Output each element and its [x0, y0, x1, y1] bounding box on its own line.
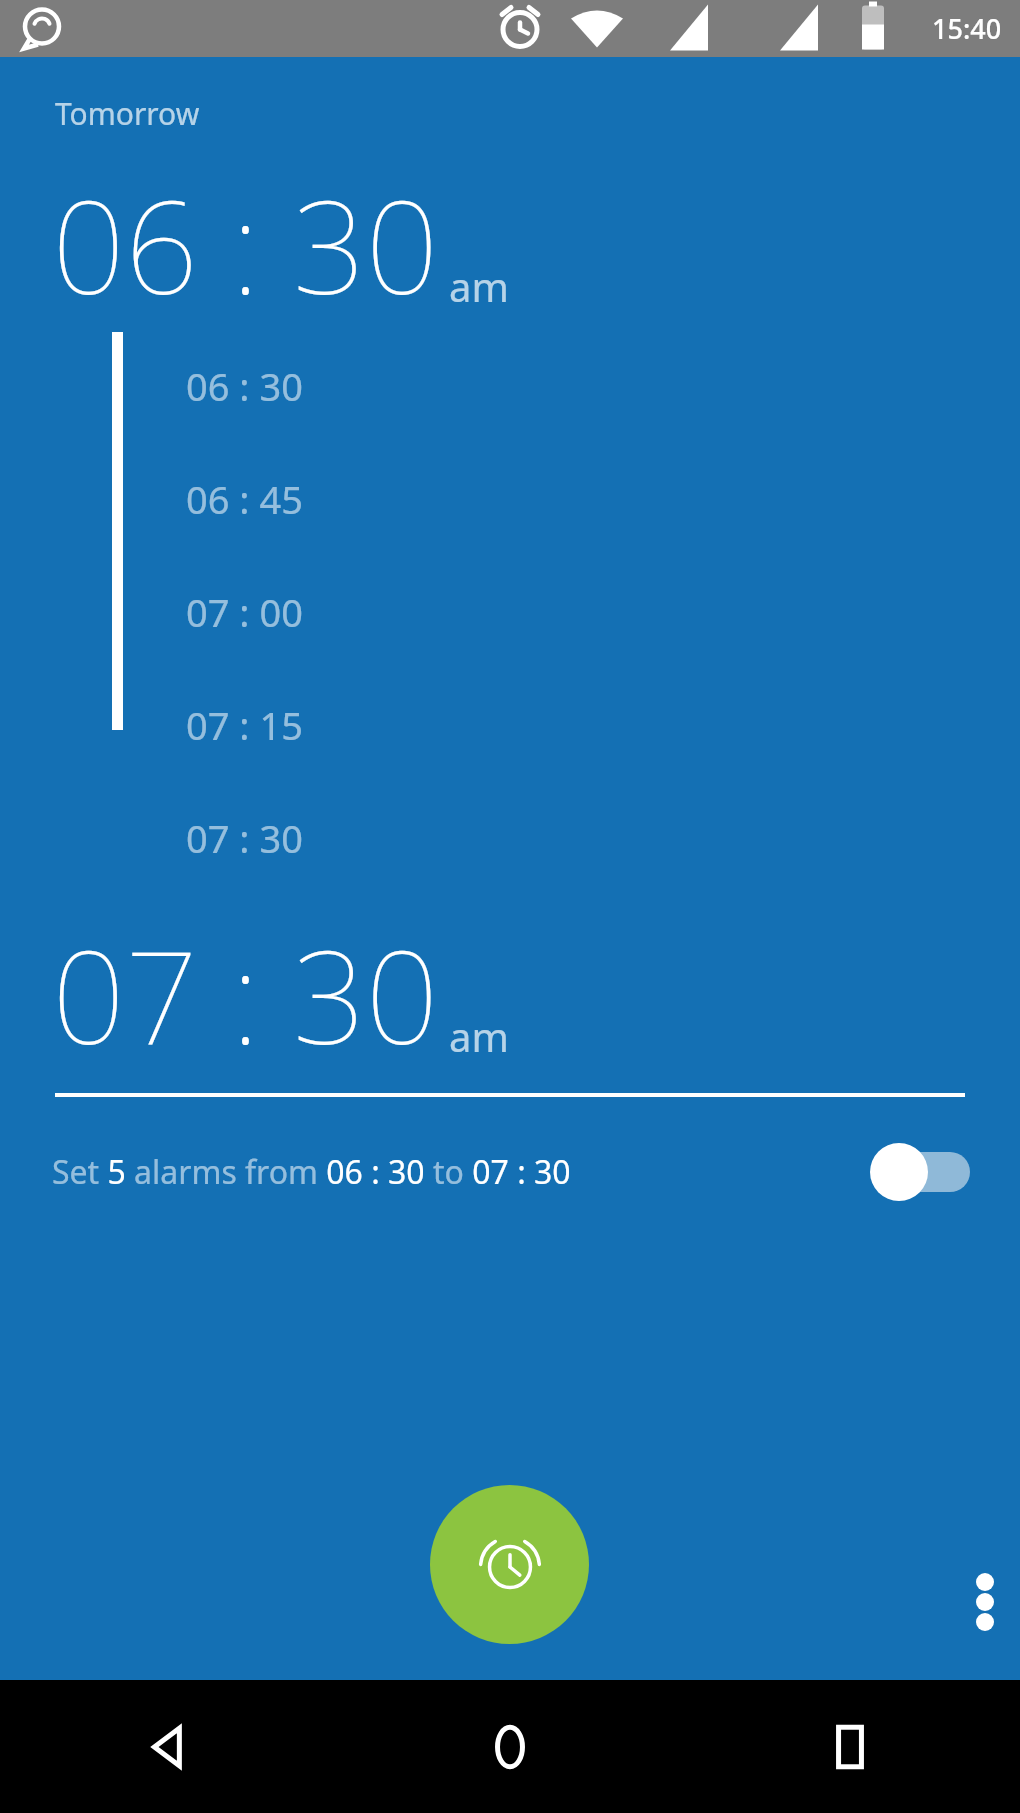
staticText: 06 : 45 [186, 473, 303, 525]
button[interactable]: 06 : 30 [52, 157, 509, 331]
staticText: Tomorrow [55, 93, 200, 134]
staticText: 07 : 30 [186, 812, 303, 864]
button[interactable]: 07 : 00 [180, 580, 309, 644]
staticText: 06 : 30 [52, 157, 439, 331]
staticText: am [449, 1009, 509, 1063]
button[interactable]: Enable alarms [870, 1133, 980, 1211]
button[interactable]: Back [0, 1680, 340, 1813]
button[interactable]: 07 : 15 [180, 693, 309, 757]
button[interactable]: More options [940, 1557, 1020, 1647]
button[interactable]: 06 : 45 [180, 467, 309, 531]
staticText: 07 : 00 [186, 586, 303, 638]
staticText: 15:40 [932, 10, 1002, 47]
button[interactable]: Home [340, 1680, 680, 1813]
button[interactable]: 07 : 30 [52, 907, 509, 1081]
button[interactable]: Set 5 alarms from 06 : 30 to 07 : 30 [0, 1122, 1020, 1222]
staticText: 07 : 15 [186, 699, 303, 751]
button[interactable]: Set alarm [430, 1485, 589, 1644]
staticText: 06 : 30 [186, 360, 303, 412]
button[interactable]: Recent apps [680, 1680, 1020, 1813]
button[interactable]: 07 : 30 [180, 806, 309, 870]
staticText: 07 : 30 [52, 907, 439, 1081]
staticText: Set 5 alarms from 06 : 30 to 07 : 30 [52, 1150, 571, 1194]
button[interactable]: 06 : 30 [180, 354, 309, 418]
staticText: am [449, 259, 509, 313]
